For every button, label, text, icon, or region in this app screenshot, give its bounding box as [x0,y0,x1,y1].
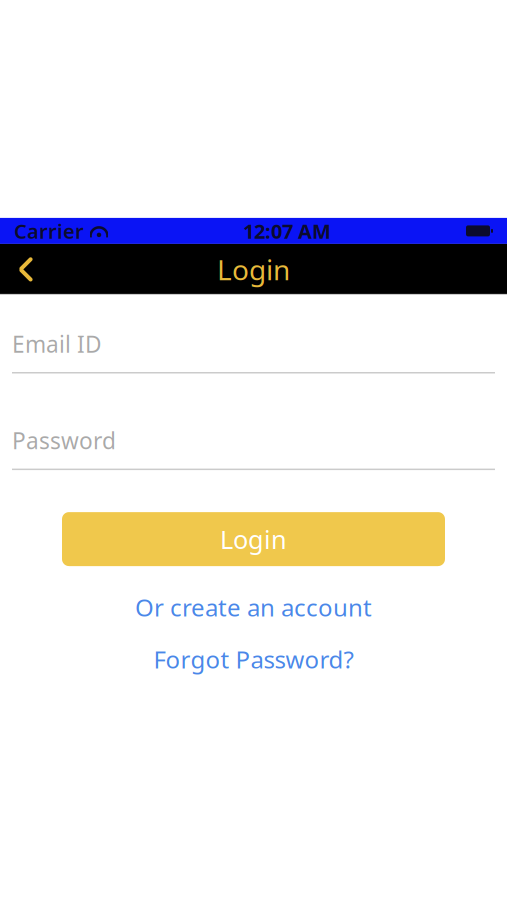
staticText: Forgot Password? [153,643,353,675]
staticText: Login [217,251,290,288]
button[interactable]: Back [0,244,52,295]
staticText: Or create an account [135,591,372,623]
button[interactable]: Or create an account [0,592,507,622]
staticText: Password [12,425,116,456]
button[interactable]: Forgot Password? [0,644,507,674]
staticText: Login [220,522,287,556]
staticText: Email ID [12,329,102,359]
staticText: Carrier [14,218,84,244]
staticText: 12:07 AM [243,218,331,244]
button[interactable]: Login [62,512,445,566]
